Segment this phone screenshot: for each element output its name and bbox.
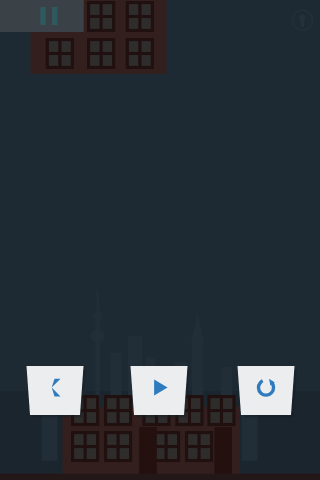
button[interactable]: Restart: [238, 366, 295, 415]
button[interactable]: Back: [27, 366, 84, 415]
button[interactable]: Play: [131, 366, 188, 415]
